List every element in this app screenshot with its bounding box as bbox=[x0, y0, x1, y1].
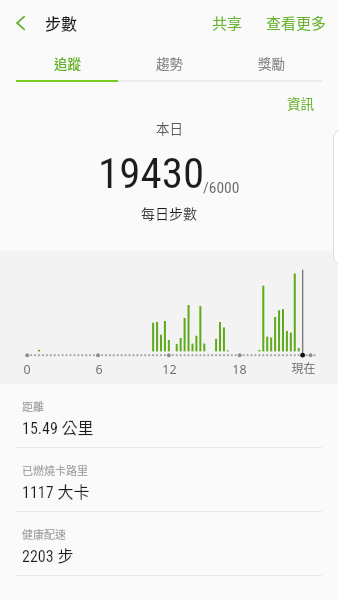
staticText: 大卡 bbox=[54, 479, 90, 502]
button[interactable]: 獎勵 bbox=[220, 46, 322, 80]
staticText: 步數 bbox=[45, 11, 78, 34]
button[interactable]: 趨勢 bbox=[118, 46, 220, 80]
staticText: 步 bbox=[54, 543, 74, 566]
staticText: 18 bbox=[232, 361, 247, 378]
staticText: 追蹤 bbox=[54, 53, 81, 73]
staticText: 15.49 bbox=[22, 419, 58, 438]
button[interactable]: 健康配速 bbox=[0, 512, 338, 576]
button[interactable]: 共享 bbox=[200, 3, 255, 43]
staticText: 19430 bbox=[98, 148, 205, 198]
staticText: 0 bbox=[23, 361, 31, 378]
staticText: 6 bbox=[95, 361, 103, 378]
staticText: 健康配速 bbox=[22, 526, 66, 542]
staticText: 資訊 bbox=[287, 93, 314, 113]
staticText: 獎勵 bbox=[258, 53, 285, 73]
staticText: 已燃燒卡路里 bbox=[22, 462, 88, 478]
button[interactable]: 資訊 bbox=[265, 85, 338, 119]
staticText: 距離 bbox=[22, 398, 44, 414]
staticText: 2203 bbox=[22, 547, 54, 566]
staticText: 公里 bbox=[58, 415, 94, 438]
staticText: 每日步數 bbox=[141, 203, 197, 223]
button[interactable]: Back bbox=[0, 0, 42, 46]
staticText: 1117 bbox=[22, 483, 54, 502]
button[interactable]: 查看更多 bbox=[255, 3, 338, 43]
staticText: 12 bbox=[162, 361, 177, 378]
button[interactable]: 已燃燒卡路里 bbox=[0, 448, 338, 512]
staticText: 本日 bbox=[156, 118, 183, 138]
staticText: 趨勢 bbox=[156, 53, 183, 73]
staticText: 查看更多 bbox=[266, 12, 327, 34]
button[interactable]: 追蹤 bbox=[16, 46, 118, 80]
staticText: 共享 bbox=[212, 12, 243, 34]
staticText: 現在 bbox=[291, 359, 316, 376]
button[interactable]: 距離 bbox=[0, 384, 338, 448]
staticText: /6000 bbox=[203, 179, 240, 197]
